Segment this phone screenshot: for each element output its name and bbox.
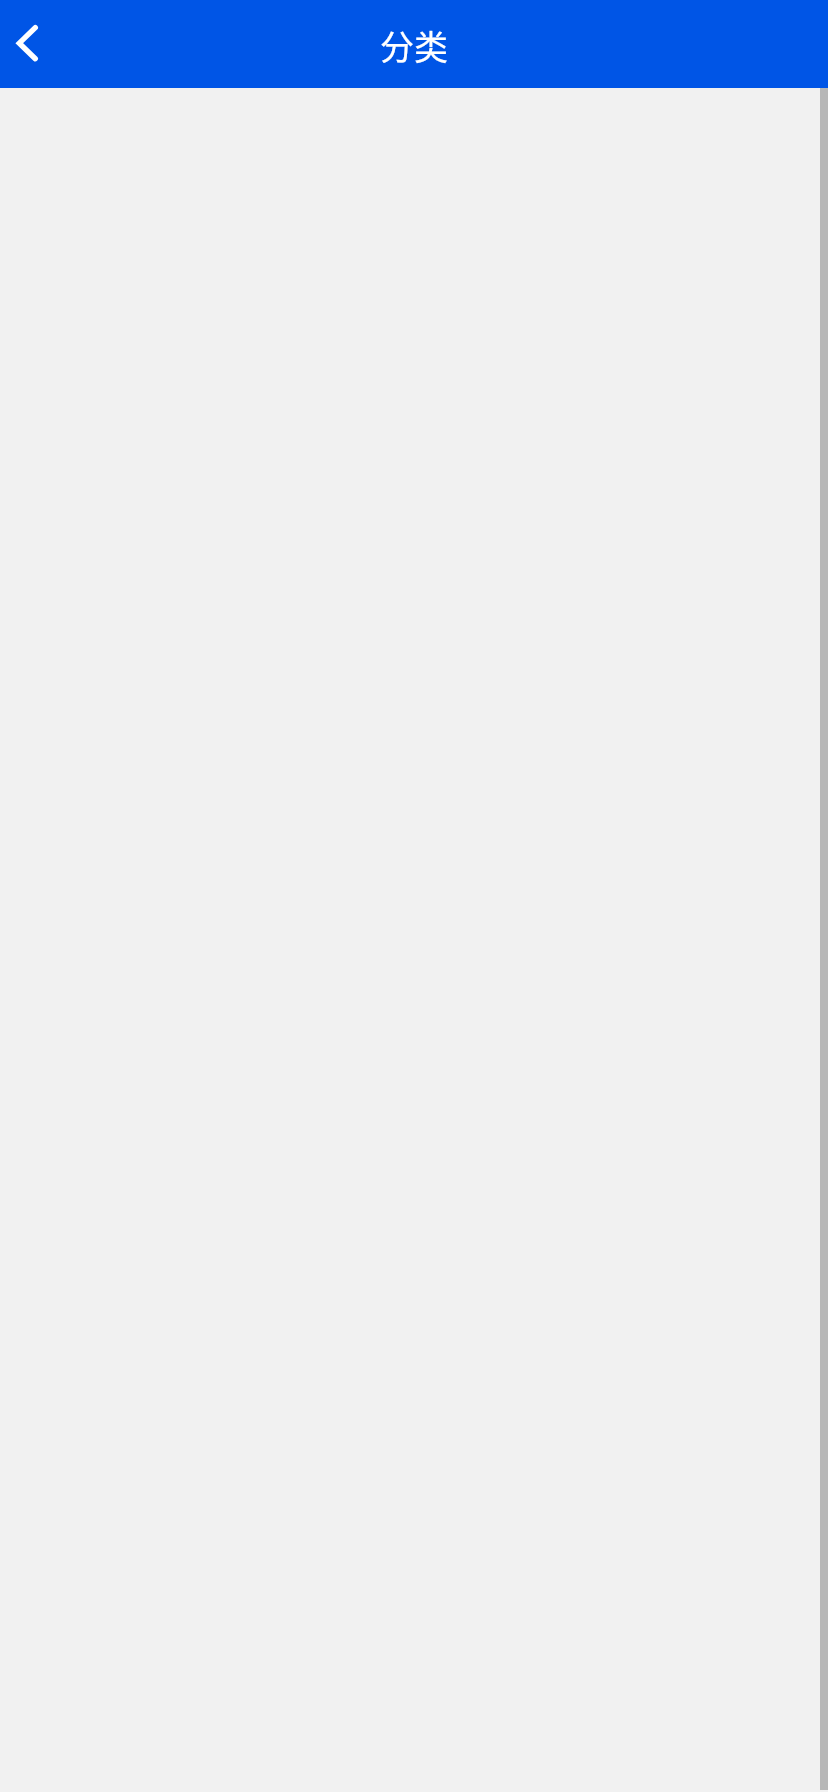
staticText: 分类 (380, 21, 448, 70)
button[interactable]: Back (0, 0, 54, 88)
